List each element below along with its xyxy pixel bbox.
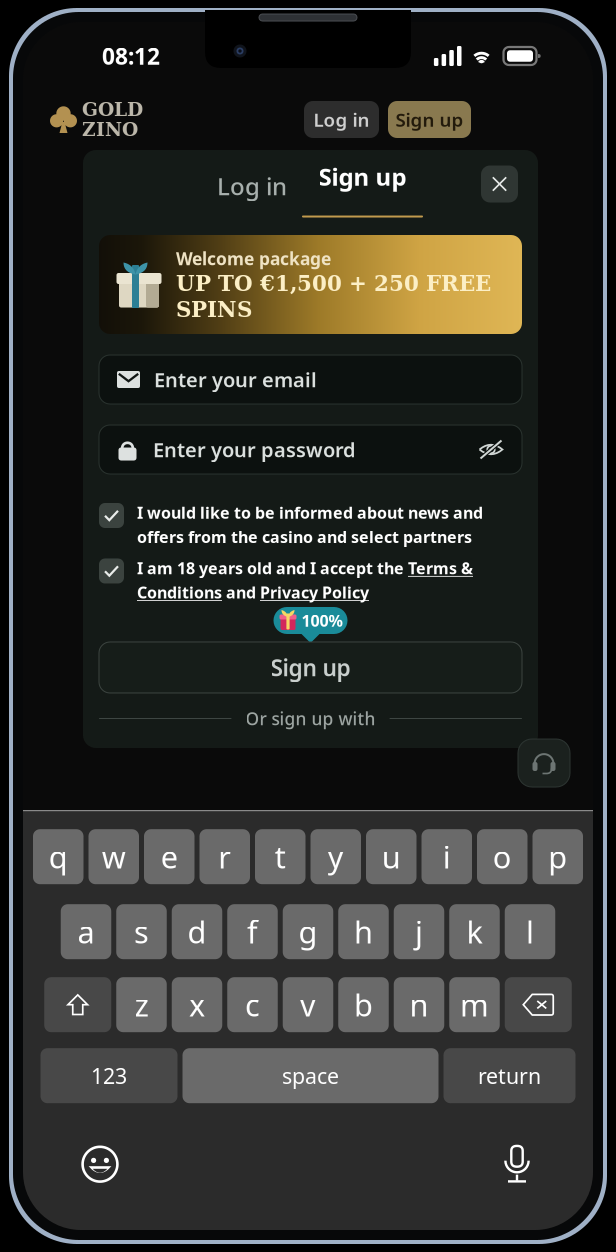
button[interactable]: o [477,829,527,884]
button[interactable]: t [255,829,305,884]
button[interactable]: k [449,904,500,959]
staticText: Or sign up with [245,707,375,730]
button[interactable]: m [449,977,500,1032]
staticText: l [526,911,534,952]
staticText: s [134,911,149,952]
button[interactable]: i [421,829,472,884]
button[interactable]: l [505,904,555,959]
staticText: Log in [313,107,369,132]
staticText: g [298,911,317,952]
button[interactable]: h [338,904,389,959]
button[interactable]: x [172,977,222,1032]
staticText: b [354,984,373,1025]
staticText: Sign up [318,161,406,192]
staticText: Conditions and Privacy Policy [137,582,369,603]
button[interactable]: I am 18 years old and I accept the Terms… [99,557,528,603]
staticText: GOLD [82,99,143,120]
staticText: t [275,836,286,877]
button[interactable]: s [116,904,167,959]
staticText: n [409,984,428,1025]
staticText: e [161,836,178,877]
staticText: 08:12 [102,41,160,71]
button[interactable]: I would like to be informed about news a… [99,502,528,547]
staticText: UP TO €1,500 + 250 FREE [176,271,491,296]
button[interactable]: Enter your password [99,425,522,474]
staticText: a [77,911,94,952]
button[interactable]: Support [518,739,570,787]
button[interactable]: 123 [40,1048,177,1103]
button[interactable]: b [338,977,389,1032]
staticText: Sign up [270,652,350,682]
button[interactable]: c [227,977,278,1032]
staticText: Sign up [395,107,463,132]
button[interactable]: Sign up [388,101,471,138]
staticText: Enter your email [154,366,317,393]
button[interactable]: return [443,1048,575,1103]
button[interactable]: Sign up [302,154,423,217]
button[interactable]: z [116,977,167,1032]
button[interactable]: Emoji [78,1142,122,1186]
button[interactable]: d [172,904,222,959]
staticText: i [443,836,451,877]
staticText: c [245,984,260,1025]
button[interactable]: Log in [304,101,379,138]
button[interactable]: Sign up [99,642,522,693]
button[interactable]: g [283,904,333,959]
staticText: ZINO [82,118,138,140]
staticText: k [466,911,482,952]
button[interactable]: e [144,829,194,884]
staticText: p [548,836,567,877]
staticText: offers from the casino and select partne… [137,526,472,547]
button[interactable]: Log in [217,164,287,208]
button[interactable]: Close [481,165,518,202]
staticText: 123 [91,1061,127,1090]
staticText: Welcome package [176,247,331,270]
staticText: v [300,984,316,1025]
staticText: I would like to be informed about news a… [137,502,483,523]
button[interactable]: j [394,904,444,959]
staticText: Enter your password [153,436,356,463]
button[interactable]: a [61,904,111,959]
staticText: j [415,911,423,952]
button[interactable]: f [227,904,278,959]
staticText: I am 18 years old and I accept the Terms… [137,557,473,579]
staticText: x [189,984,205,1025]
staticText: m [460,984,489,1025]
staticText: z [134,984,148,1025]
button[interactable]: q [33,829,83,884]
staticText: f [247,911,258,952]
button[interactable]: Backspace [505,977,572,1032]
staticText: w [102,836,126,877]
staticText: space [282,1061,339,1090]
button[interactable]: p [532,829,583,884]
staticText: u [382,836,401,877]
button[interactable]: Enter your email [99,355,522,404]
button[interactable]: w [88,829,139,884]
button[interactable]: Dictate [495,1142,539,1186]
staticText: y [328,836,344,877]
staticText: q [49,836,68,877]
button[interactable]: r [199,829,250,884]
button[interactable]: y [310,829,361,884]
button[interactable]: n [394,977,444,1032]
staticText: return [478,1061,541,1090]
button[interactable]: space [182,1048,438,1103]
button[interactable]: v [283,977,333,1032]
button[interactable]: Shift [44,977,111,1032]
staticText: d [187,911,206,952]
staticText: r [218,836,231,877]
button[interactable]: u [366,829,416,884]
staticText: o [493,836,512,877]
staticText: 100% [301,610,342,631]
staticText: h [354,911,373,952]
staticText: Log in [217,170,287,202]
staticText: SPINS [176,297,252,322]
